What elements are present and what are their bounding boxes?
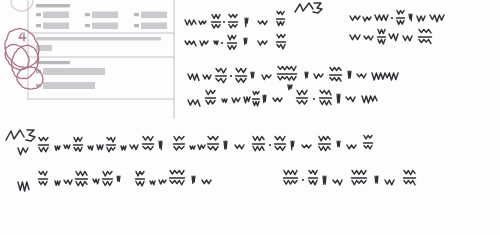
button[interactable]: Scanned page of handwritten math homewor… [0, 0, 500, 235]
